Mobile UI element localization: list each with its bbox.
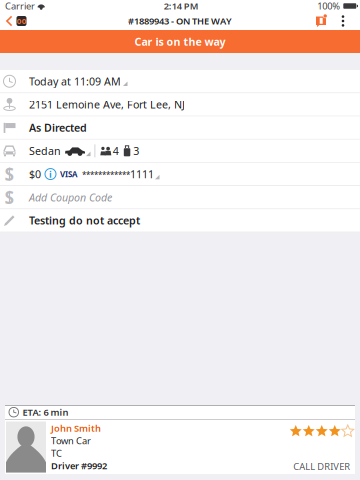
- staticText: VISA: [60, 169, 78, 179]
- staticText: Today at 11:09 AM: [29, 74, 121, 88]
- staticText: S: [4, 162, 14, 185]
- staticText: Add Coupon Code: [29, 190, 112, 204]
- button[interactable]: S: [0, 163, 360, 186]
- staticText: Driver #9992: [51, 460, 107, 472]
- button[interactable]: Today at 11:09 AM: [0, 70, 360, 93]
- staticText: Carrier: [5, 0, 35, 12]
- button[interactable]: Sedan: [0, 140, 360, 163]
- staticText: #1889943 - ON THE WAY: [128, 15, 232, 27]
- staticText: 3: [133, 144, 139, 158]
- staticText: Town Car: [51, 435, 91, 447]
- staticText: 1111: [130, 167, 154, 181]
- button[interactable]: 2151 Lemoine Ave, Fort Lee, NJ: [0, 93, 360, 116]
- staticText: i: [49, 168, 52, 180]
- staticText: 4: [113, 144, 119, 158]
- staticText: Testing do not accept: [29, 213, 140, 228]
- staticText: 2:14 PM: [164, 0, 199, 12]
- staticText: ************: [82, 169, 130, 180]
- button[interactable]: Driver John Smith, call driver: [5, 420, 355, 474]
- staticText: $0: [29, 167, 41, 181]
- staticText: ETA: 6 min: [22, 406, 68, 418]
- button[interactable]: S: [0, 186, 360, 209]
- staticText: oo: [16, 16, 26, 26]
- staticText: CALL DRIVER: [293, 460, 350, 472]
- button[interactable]: More options: [332, 12, 354, 30]
- button[interactable]: As Directed: [0, 116, 360, 140]
- button[interactable]: ETA: 6 min: [5, 405, 355, 419]
- staticText: 2151 Lemoine Ave, Fort Lee, NJ: [29, 97, 185, 112]
- staticText: 100%: [317, 0, 340, 12]
- button[interactable]: Back: [0, 12, 30, 30]
- button[interactable]: Testing do not accept: [0, 209, 360, 232]
- staticText: S: [4, 186, 14, 209]
- staticText: TC: [51, 447, 62, 459]
- staticText: Sedan: [29, 144, 61, 158]
- staticText: John Smith: [51, 422, 101, 434]
- staticText: As Directed: [29, 121, 87, 135]
- button[interactable]: Messages: [310, 12, 332, 30]
- staticText: Car is on the way: [134, 34, 225, 49]
